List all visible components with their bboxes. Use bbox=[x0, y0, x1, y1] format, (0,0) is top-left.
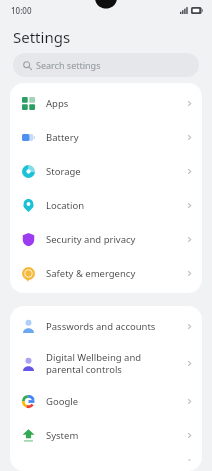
button[interactable]: Apps bbox=[10, 86, 202, 120]
staticText: Battery bbox=[46, 131, 180, 144]
button[interactable]: Battery bbox=[10, 120, 202, 154]
staticText: Apps bbox=[46, 97, 180, 110]
button[interactable]: Storage bbox=[10, 154, 202, 188]
button[interactable]: Safety & emergency bbox=[10, 256, 202, 290]
staticText: Digital Wellbeing and parental controls bbox=[46, 351, 180, 376]
staticText: Google bbox=[46, 395, 180, 408]
staticText: Passwords and accounts bbox=[46, 320, 180, 333]
button[interactable]: Location bbox=[10, 188, 202, 222]
staticText: Location bbox=[46, 199, 180, 212]
staticText: Settings bbox=[13, 27, 71, 47]
button[interactable]: System bbox=[10, 418, 202, 452]
button[interactable]: Security and privacy bbox=[10, 222, 202, 256]
button[interactable]: Search settings bbox=[13, 53, 199, 77]
button[interactable]: Digital Wellbeing and parental controls bbox=[10, 343, 202, 384]
staticText: System bbox=[46, 429, 180, 442]
button[interactable]: Google bbox=[10, 384, 202, 418]
button[interactable]: Passwords and accounts bbox=[10, 309, 202, 343]
staticText: Security and privacy bbox=[46, 233, 180, 246]
staticText: Search settings bbox=[36, 59, 101, 71]
staticText: Safety & emergency bbox=[46, 267, 180, 280]
staticText: Storage bbox=[46, 165, 180, 178]
staticText: 10:00 bbox=[11, 5, 32, 16]
